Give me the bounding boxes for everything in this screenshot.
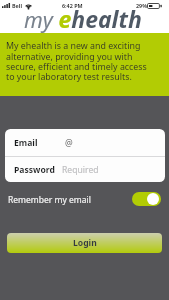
staticText: 29% (136, 2, 148, 9)
staticText: Login (73, 237, 97, 249)
staticText: my ehealth (24, 3, 142, 34)
staticText: Password (14, 164, 55, 176)
staticText: @ (65, 137, 73, 149)
staticText: Remember my email (8, 194, 91, 206)
button[interactable]: Login (7, 233, 162, 253)
staticText: Required (62, 164, 99, 176)
button[interactable]: Email (5, 129, 165, 156)
staticText: Bell (12, 2, 23, 9)
button[interactable]: Password (5, 157, 165, 182)
staticText: My ehealth is a new and exciting alterna… (6, 40, 147, 83)
button[interactable]: Remember my email (0, 193, 169, 207)
other: Remember my email toggle (132, 192, 161, 206)
staticText: Email (14, 137, 38, 149)
staticText: 6:42 PM (62, 2, 83, 9)
